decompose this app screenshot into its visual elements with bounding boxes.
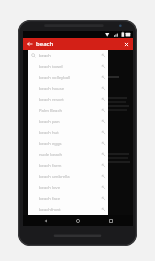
button[interactable]: beach bbox=[28, 50, 108, 61]
button[interactable]: beachfront bbox=[28, 204, 108, 215]
staticText: beach umbrella bbox=[39, 174, 101, 180]
button[interactable]: beach towel bbox=[28, 61, 108, 72]
button[interactable]: beach face bbox=[28, 193, 108, 204]
staticText: beach towel bbox=[39, 64, 101, 70]
button[interactable]: beach hut bbox=[28, 127, 108, 138]
staticText: nude beach bbox=[39, 152, 101, 158]
button[interactable]: beach farm bbox=[28, 160, 108, 171]
staticText: beach house bbox=[39, 86, 101, 92]
staticText: Palm Beach bbox=[39, 108, 101, 114]
button[interactable]: beach eggs bbox=[28, 138, 108, 149]
button[interactable]: beach house bbox=[28, 83, 108, 94]
staticText: beach farm bbox=[39, 163, 101, 169]
button[interactable]: Back bbox=[23, 38, 36, 50]
button[interactable]: beach pan bbox=[28, 116, 108, 127]
staticText: beach eggs bbox=[39, 141, 101, 147]
staticText: beach bbox=[39, 53, 101, 59]
button[interactable]: Back bbox=[36, 215, 56, 226]
staticText: beachfront bbox=[39, 207, 101, 213]
button[interactable]: Recent apps bbox=[101, 215, 121, 226]
staticText: beach love bbox=[39, 185, 101, 191]
staticText: beach face bbox=[39, 196, 101, 202]
button[interactable]: beach love bbox=[28, 182, 108, 193]
staticText: beach resort bbox=[39, 97, 101, 103]
button[interactable]: beach volleyball bbox=[28, 72, 108, 83]
button[interactable]: Clear search bbox=[120, 38, 133, 50]
staticText: beach volleyball bbox=[39, 75, 101, 81]
button[interactable]: Palm Beach bbox=[28, 105, 108, 116]
button[interactable]: beach resort bbox=[28, 94, 108, 105]
button[interactable]: Home bbox=[68, 215, 88, 226]
button[interactable]: beach umbrella bbox=[28, 171, 108, 182]
button[interactable]: nude beach bbox=[28, 149, 108, 160]
staticText: beach bbox=[36, 40, 120, 48]
staticText: beach hut bbox=[39, 130, 101, 136]
staticText: beach pan bbox=[39, 119, 101, 125]
